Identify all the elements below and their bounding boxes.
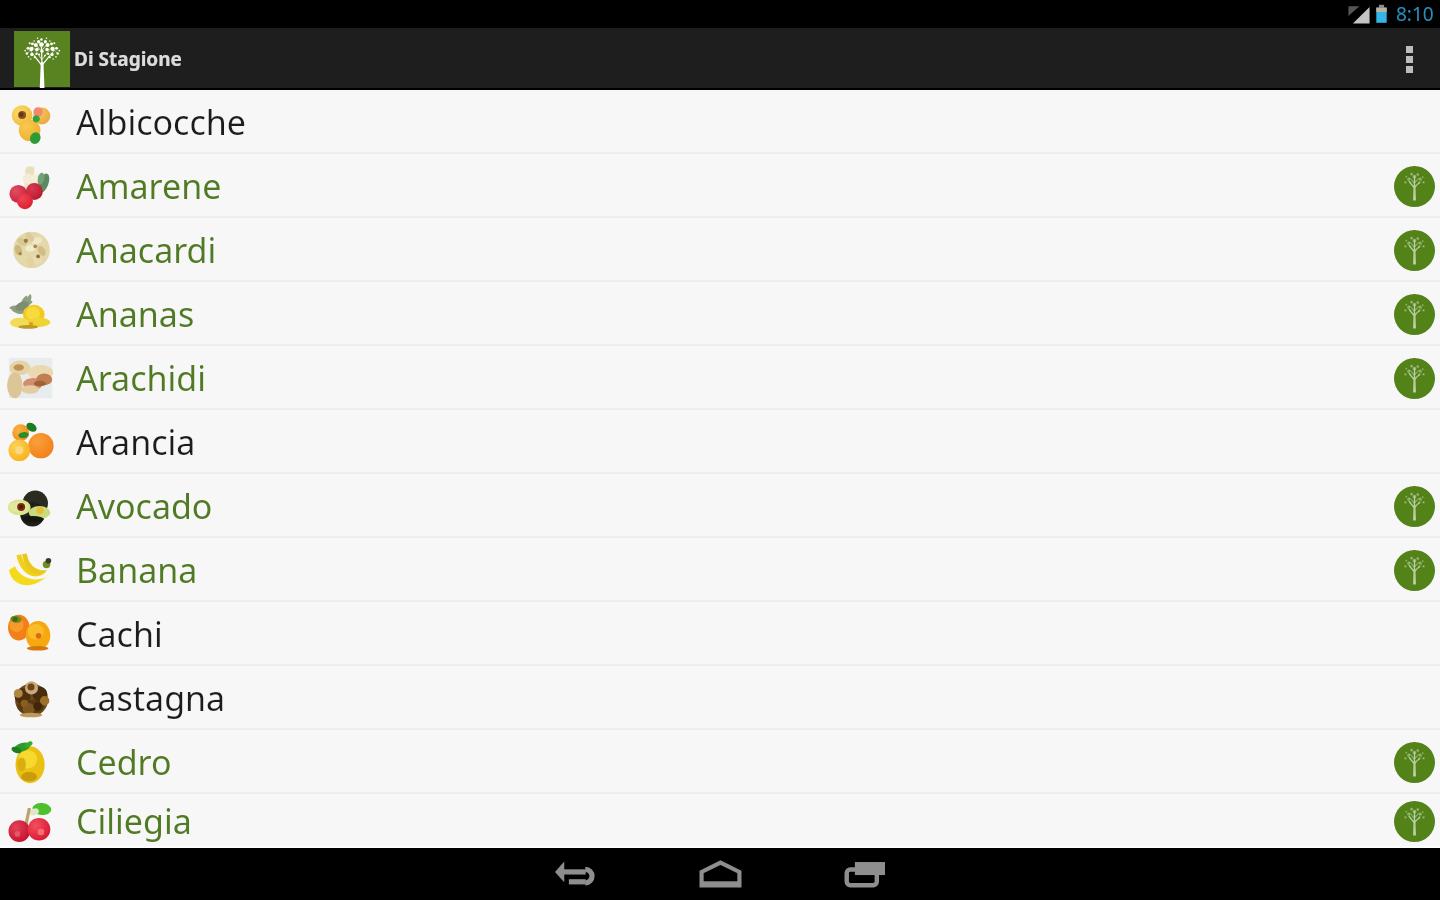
staticText: 8:10 xyxy=(1396,1,1434,27)
staticText: Arachidi xyxy=(76,355,206,401)
button[interactable]: Recent apps xyxy=(826,848,906,900)
button[interactable]: Di Stagione xyxy=(0,28,200,90)
button[interactable]: Albicocche xyxy=(0,90,1440,154)
staticText: Albicocche xyxy=(76,99,246,145)
staticText: Cedro xyxy=(76,739,172,785)
staticText: Amarene xyxy=(76,163,222,209)
button[interactable]: Banana xyxy=(0,538,1440,602)
staticText: Banana xyxy=(76,547,198,593)
staticText: Ciliegia xyxy=(76,798,192,844)
staticText: Ananas xyxy=(76,291,195,337)
button[interactable]: Back xyxy=(536,848,616,900)
staticText: Arancia xyxy=(76,419,196,465)
button[interactable]: Amarene xyxy=(0,154,1440,218)
button[interactable]: Ciliegia xyxy=(0,794,1440,848)
button[interactable]: Anacardi xyxy=(0,218,1440,282)
staticText: Cachi xyxy=(76,611,163,657)
staticText: Avocado xyxy=(76,483,213,529)
button[interactable]: More options xyxy=(1378,28,1440,90)
button[interactable]: Arachidi xyxy=(0,346,1440,410)
button[interactable]: Cachi xyxy=(0,602,1440,666)
button[interactable]: Ananas xyxy=(0,282,1440,346)
button[interactable]: Castagna xyxy=(0,666,1440,730)
button[interactable]: Arancia xyxy=(0,410,1440,474)
button[interactable]: Avocado xyxy=(0,474,1440,538)
button[interactable]: Home xyxy=(680,848,760,900)
staticText: Anacardi xyxy=(76,227,217,273)
button[interactable]: Cedro xyxy=(0,730,1440,794)
staticText: Castagna xyxy=(76,675,226,721)
staticText: Di Stagione xyxy=(74,46,182,72)
